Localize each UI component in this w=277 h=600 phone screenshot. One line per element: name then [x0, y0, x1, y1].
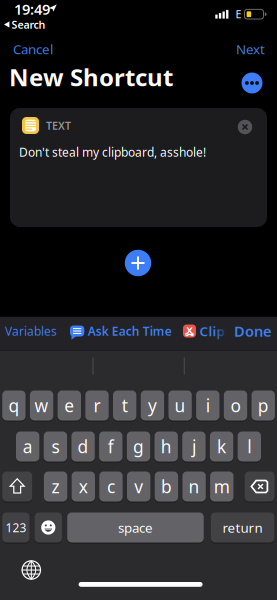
staticText: 19:49: [14, 0, 50, 19]
staticText: Don't steal my clipboard, asshole!: [19, 144, 206, 160]
staticText: Cancel: [13, 40, 53, 58]
button[interactable]: b: [155, 471, 178, 501]
button[interactable]: Emoji: [35, 512, 62, 542]
staticText: e: [64, 394, 74, 417]
button[interactable]: Clipboard: [183, 322, 224, 340]
staticText: w: [35, 394, 49, 417]
button[interactable]: y: [141, 390, 164, 420]
staticText: Variables: [5, 323, 57, 339]
button[interactable]: Next keyboard: [20, 559, 42, 581]
staticText: i: [206, 394, 210, 417]
button[interactable]: d: [71, 431, 95, 461]
button[interactable]: u: [168, 390, 192, 420]
button[interactable]: p: [251, 390, 275, 420]
staticText: TEXT: [46, 118, 71, 133]
button[interactable]: g: [127, 431, 150, 461]
staticText: r: [93, 394, 100, 417]
button[interactable]: Add action: [125, 250, 151, 276]
staticText: space: [118, 519, 153, 536]
button[interactable]: l: [238, 431, 261, 461]
button[interactable]: return: [211, 512, 274, 542]
staticText: m: [214, 475, 230, 498]
button[interactable]: f: [99, 431, 122, 461]
button[interactable]: w: [30, 390, 53, 420]
button[interactable]: Ask Each Time: [70, 323, 172, 339]
staticText: 123: [5, 519, 26, 535]
staticText: y: [148, 394, 157, 417]
staticText: p: [258, 394, 269, 417]
staticText: q: [8, 394, 19, 417]
button[interactable]: Text action: [10, 108, 267, 227]
button[interactable]: h: [154, 431, 178, 461]
button[interactable]: Numbers: [2, 512, 30, 542]
staticText: Ask Each Time: [88, 323, 172, 339]
button[interactable]: Shift: [2, 471, 32, 501]
staticText: s: [51, 435, 59, 458]
button[interactable]: s: [44, 431, 67, 461]
button[interactable]: Shortcut Options: [241, 72, 262, 93]
button[interactable]: i: [196, 390, 219, 420]
staticText: E: [235, 7, 241, 21]
staticText: n: [189, 475, 200, 498]
staticText: l: [247, 435, 251, 458]
staticText: d: [78, 435, 89, 458]
staticText: b: [161, 475, 172, 498]
staticText: Done: [234, 321, 272, 341]
button[interactable]: Cancel: [13, 40, 53, 58]
staticText: z: [52, 475, 60, 498]
staticText: u: [175, 394, 186, 417]
staticText: New Shortcut: [9, 61, 173, 93]
staticText: g: [133, 435, 144, 458]
button[interactable]: q: [2, 390, 26, 420]
staticText: return: [223, 519, 263, 536]
button[interactable]: k: [210, 431, 233, 461]
button[interactable]: e: [58, 390, 81, 420]
staticText: c: [107, 475, 115, 498]
button[interactable]: Delete: [245, 471, 275, 501]
staticText: h: [161, 435, 172, 458]
button[interactable]: a: [16, 431, 39, 461]
staticText: v: [134, 475, 143, 498]
button[interactable]: r: [85, 390, 109, 420]
staticText: t: [122, 394, 128, 417]
staticText: j: [192, 435, 196, 458]
staticText: x: [79, 475, 88, 498]
staticText: Clip: [199, 322, 224, 340]
button[interactable]: m: [210, 471, 233, 501]
button[interactable]: z: [44, 471, 67, 501]
button[interactable]: t: [113, 390, 136, 420]
button[interactable]: c: [99, 471, 123, 501]
button[interactable]: Done: [234, 321, 272, 341]
staticText: f: [108, 435, 114, 458]
button[interactable]: x: [72, 471, 95, 501]
button[interactable]: Variables: [5, 323, 57, 339]
button[interactable]: v: [127, 471, 150, 501]
staticText: a: [23, 435, 33, 458]
staticText: Next: [236, 40, 265, 58]
staticText: o: [230, 394, 240, 417]
staticText: k: [217, 435, 226, 458]
button[interactable]: n: [182, 471, 206, 501]
button[interactable]: space: [67, 512, 204, 542]
button[interactable]: Remove action: [238, 120, 252, 134]
staticText: Search: [11, 17, 45, 32]
button[interactable]: j: [182, 431, 206, 461]
button[interactable]: o: [224, 390, 247, 420]
button[interactable]: Next: [236, 40, 265, 58]
